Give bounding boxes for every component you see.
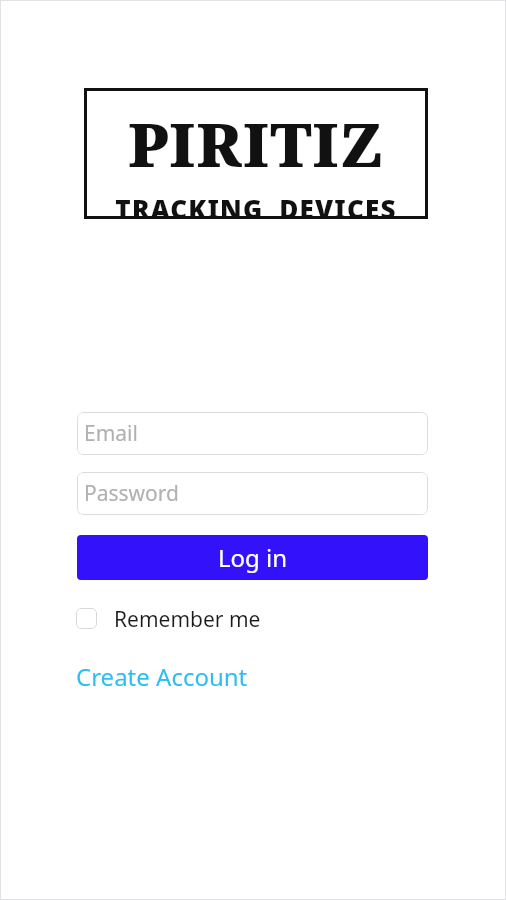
staticText: Log in	[218, 541, 288, 574]
staticText: Remember me	[114, 605, 261, 631]
button[interactable]: Create Account	[76, 660, 248, 693]
button[interactable]: Password	[77, 472, 428, 515]
staticText: Email	[84, 419, 138, 448]
staticText: Create Account	[76, 660, 248, 693]
button[interactable]: Remember me	[76, 605, 261, 631]
staticText: TRACKING DEVICES	[115, 191, 397, 219]
staticText: Password	[84, 479, 179, 508]
button[interactable]: Email	[77, 412, 428, 455]
button[interactable]: Log in	[77, 535, 428, 580]
staticText: PIRITIZ	[128, 103, 385, 185]
